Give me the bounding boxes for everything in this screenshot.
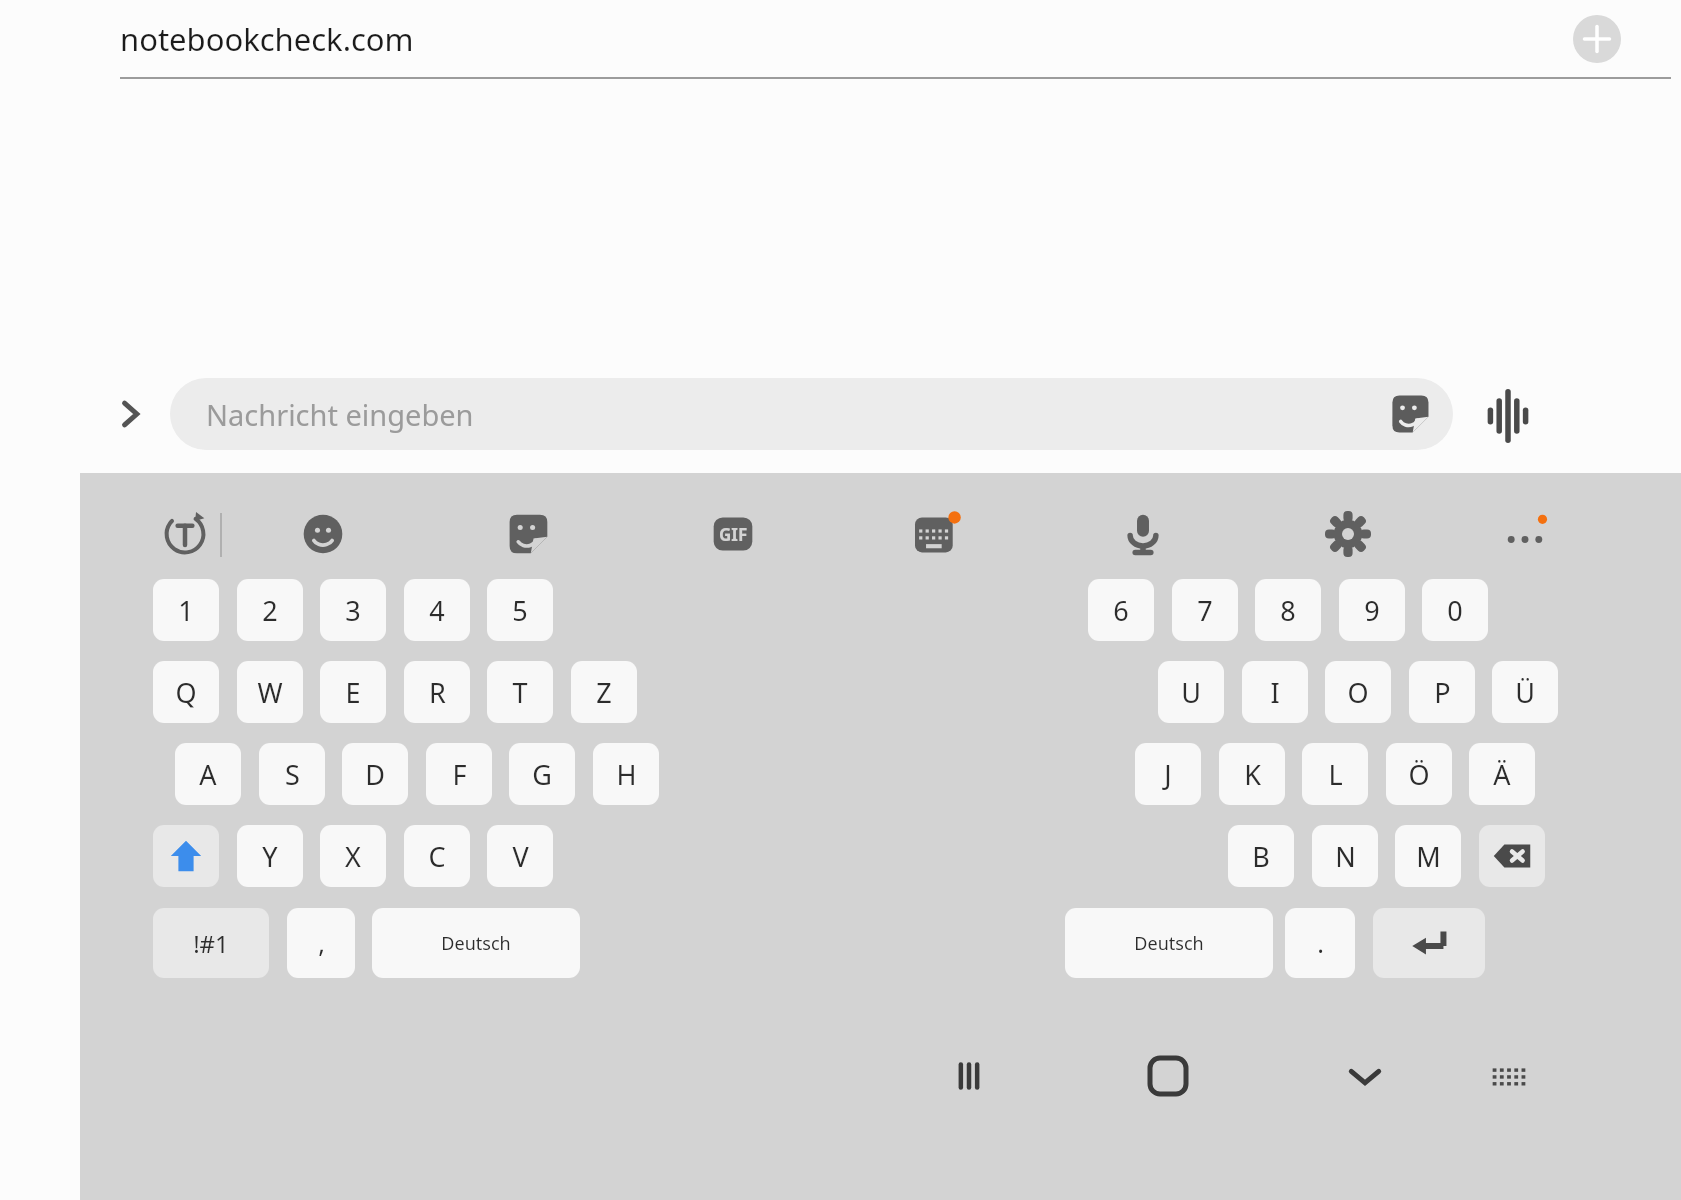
button[interactable]: X	[320, 825, 386, 887]
button[interactable]: B	[1228, 825, 1294, 887]
button[interactable]: GIF	[688, 498, 778, 570]
staticText: M	[1416, 838, 1441, 875]
button[interactable]: M	[1395, 825, 1461, 887]
button[interactable]: 6	[1088, 579, 1154, 641]
staticText: 4	[429, 592, 445, 629]
button[interactable]: Enter	[1373, 908, 1485, 978]
button[interactable]: Y	[237, 825, 303, 887]
button[interactable]: notebookcheck.com	[0, 0, 1681, 78]
staticText: N	[1335, 838, 1356, 875]
button[interactable]: U	[1158, 661, 1224, 723]
button[interactable]: 3	[320, 579, 386, 641]
button[interactable]: Ä	[1469, 743, 1535, 805]
button[interactable]: O	[1325, 661, 1391, 723]
staticText: !#1	[193, 927, 229, 960]
staticText: ,	[318, 926, 325, 960]
button[interactable]: H	[593, 743, 659, 805]
staticText: 5	[512, 592, 528, 629]
button[interactable]: E	[320, 661, 386, 723]
button[interactable]: K	[1219, 743, 1285, 805]
button[interactable]: J	[1135, 743, 1201, 805]
staticText: 3	[345, 592, 361, 629]
button[interactable]: N	[1312, 825, 1378, 887]
button[interactable]: Deutsch	[372, 908, 580, 978]
staticText: Deutsch	[1134, 931, 1204, 956]
button[interactable]: 9	[1339, 579, 1405, 641]
button[interactable]: Stickers	[1386, 390, 1434, 438]
button[interactable]: .	[1285, 908, 1355, 978]
button[interactable]: ,	[287, 908, 355, 978]
staticText: 0	[1447, 592, 1463, 629]
button[interactable]: Keyboard layout	[1466, 1033, 1552, 1119]
staticText: GIF	[719, 523, 748, 546]
staticText: 7	[1197, 592, 1213, 629]
button[interactable]: Recents	[926, 1033, 1012, 1119]
staticText: U	[1181, 674, 1201, 711]
staticText: Ö	[1408, 756, 1430, 793]
button[interactable]: Settings	[1303, 498, 1393, 570]
staticText: Z	[596, 674, 612, 711]
button[interactable]: Text mode	[140, 503, 230, 565]
button[interactable]: 1	[153, 579, 219, 641]
button[interactable]: Ö	[1386, 743, 1452, 805]
button[interactable]: 5	[487, 579, 553, 641]
button[interactable]: G	[509, 743, 575, 805]
staticText: 6	[1113, 592, 1129, 629]
button[interactable]: Keyboard modes	[893, 498, 983, 570]
button[interactable]: A	[175, 743, 241, 805]
button[interactable]: Expand	[104, 388, 156, 440]
button[interactable]: W	[237, 661, 303, 723]
staticText: K	[1244, 756, 1261, 793]
staticText: 1	[178, 592, 194, 629]
button[interactable]: Stickers	[483, 498, 573, 570]
button[interactable]: V	[487, 825, 553, 887]
staticText: Deutsch	[441, 931, 511, 956]
button[interactable]: More	[1480, 498, 1570, 570]
button[interactable]: T	[487, 661, 553, 723]
button[interactable]: Ü	[1492, 661, 1558, 723]
staticText: .	[1317, 926, 1324, 960]
button[interactable]: 8	[1255, 579, 1321, 641]
button[interactable]: D	[342, 743, 408, 805]
button[interactable]: Nachricht eingeben	[170, 378, 1453, 450]
button[interactable]: Z	[571, 661, 637, 723]
staticText: Ü	[1515, 674, 1535, 711]
button[interactable]: Voice message	[1482, 390, 1534, 442]
button[interactable]: C	[404, 825, 470, 887]
button[interactable]: F	[426, 743, 492, 805]
staticText: Ä	[1493, 756, 1511, 793]
button[interactable]: 0	[1422, 579, 1488, 641]
button[interactable]: Voice input	[1098, 498, 1188, 570]
staticText: 9	[1364, 592, 1380, 629]
button[interactable]: Home	[1125, 1033, 1211, 1119]
staticText: X	[345, 838, 361, 875]
staticText: G	[532, 756, 552, 793]
staticText: T	[512, 674, 528, 711]
staticText: notebookcheck.com	[120, 18, 414, 60]
button[interactable]: 4	[404, 579, 470, 641]
button[interactable]: S	[259, 743, 325, 805]
button[interactable]: R	[404, 661, 470, 723]
button[interactable]: 2	[237, 579, 303, 641]
staticText: Y	[262, 838, 278, 875]
staticText: P	[1434, 674, 1451, 711]
button[interactable]: P	[1409, 661, 1475, 723]
button[interactable]: L	[1302, 743, 1368, 805]
button[interactable]: !#1	[153, 908, 269, 978]
button[interactable]: I	[1242, 661, 1308, 723]
staticText: W	[257, 674, 283, 711]
staticText: H	[616, 756, 637, 793]
button[interactable]: 7	[1172, 579, 1238, 641]
staticText: D	[365, 756, 385, 793]
button[interactable]: New tab	[1573, 15, 1621, 63]
button[interactable]: Hide keyboard	[1322, 1033, 1408, 1119]
button[interactable]: Deutsch	[1065, 908, 1273, 978]
staticText: J	[1164, 756, 1172, 793]
button[interactable]: Emoji	[278, 498, 368, 570]
button[interactable]: Q	[153, 661, 219, 723]
staticText: C	[428, 838, 446, 875]
button[interactable]: Shift	[153, 825, 219, 887]
staticText: L	[1328, 756, 1343, 793]
button[interactable]: Backspace	[1479, 825, 1545, 887]
staticText: R	[429, 674, 446, 711]
